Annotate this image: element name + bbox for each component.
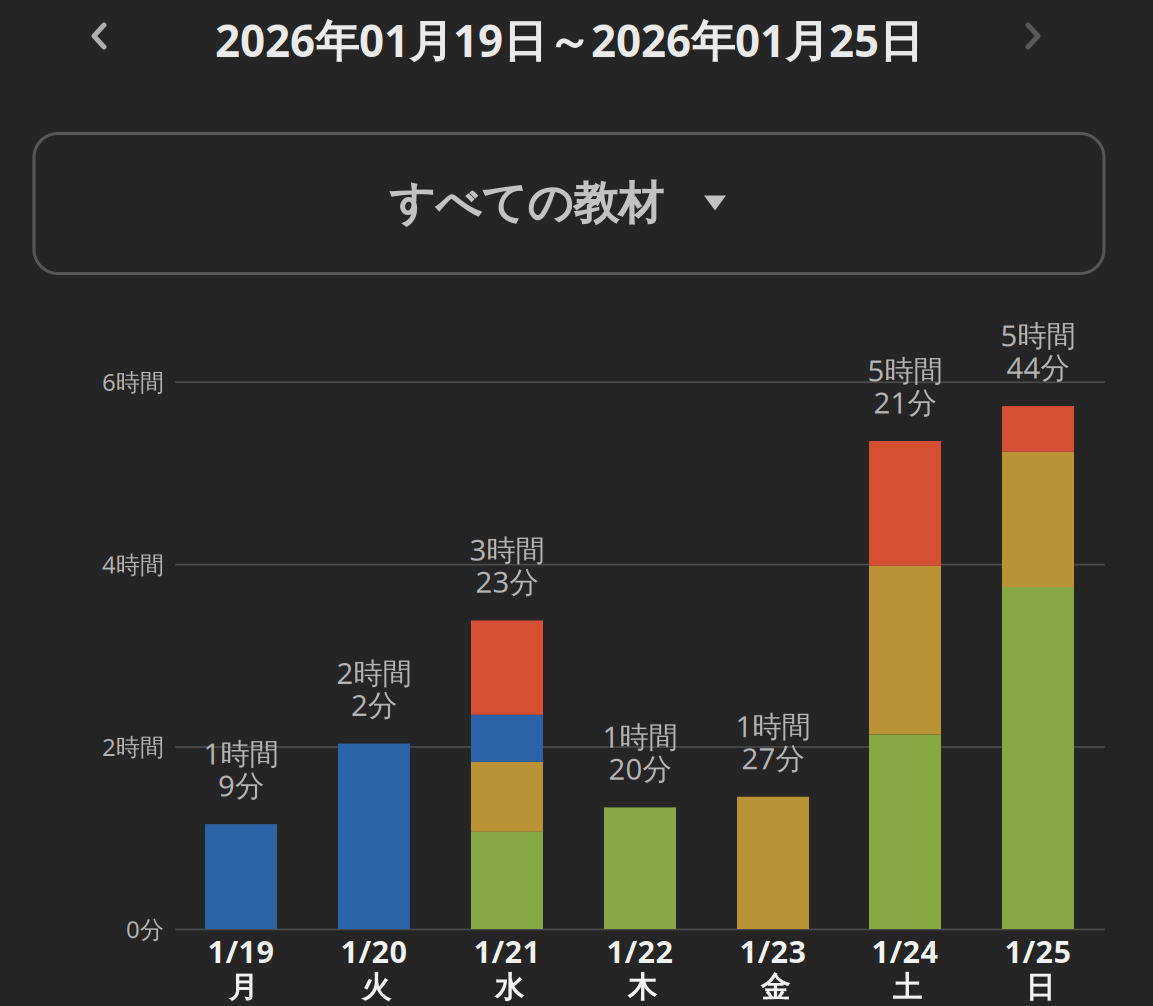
staticText: 2時間 <box>102 731 164 763</box>
staticText: 9分 <box>218 766 264 805</box>
staticText: 27分 <box>741 738 804 777</box>
staticText: 6時間 <box>102 366 164 398</box>
staticText: 1/25 <box>1004 931 1071 971</box>
staticText: 1/23 <box>739 931 806 971</box>
staticText: 水 <box>494 969 523 1005</box>
staticText: 1時間 <box>735 706 810 745</box>
button[interactable]: 次の週 <box>998 1 1068 71</box>
button[interactable]: 前の週 <box>64 1 134 71</box>
button[interactable]: 2026年01月19日～2026年01月25日 <box>189 5 949 75</box>
staticText: 1/19 <box>207 931 274 971</box>
staticText: 44分 <box>1006 348 1069 387</box>
staticText: 4時間 <box>102 548 164 580</box>
staticText: 1/22 <box>606 931 673 971</box>
staticText: 5時間 <box>867 351 942 390</box>
staticText: 1/21 <box>473 931 540 971</box>
staticText: 2026年01月19日～2026年01月25日 <box>215 11 923 69</box>
staticText: 1時間 <box>203 734 278 773</box>
staticText: 土 <box>892 969 921 1005</box>
staticText: 金 <box>760 969 789 1005</box>
staticText: 月 <box>228 969 257 1005</box>
staticText: 2時間 <box>336 653 411 692</box>
staticText: 21分 <box>873 383 936 422</box>
button[interactable]: すべての教材 <box>34 133 1104 273</box>
staticText: 2分 <box>351 685 397 724</box>
staticText: 20分 <box>608 749 671 788</box>
staticText: 1/20 <box>340 931 407 971</box>
staticText: 1時間 <box>602 717 677 756</box>
staticText: 5時間 <box>1000 316 1075 355</box>
staticText: 火 <box>361 969 390 1005</box>
staticText: 1/24 <box>871 931 938 971</box>
staticText: 0分 <box>126 913 164 945</box>
staticText: 3時間 <box>469 530 544 569</box>
staticText: 23分 <box>475 562 538 601</box>
staticText: 日 <box>1025 969 1054 1005</box>
staticText: 木 <box>627 969 656 1005</box>
staticText: すべての教材 <box>389 176 663 231</box>
